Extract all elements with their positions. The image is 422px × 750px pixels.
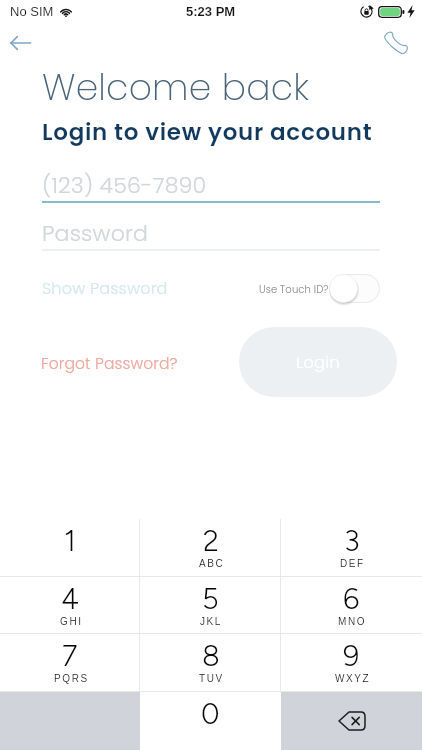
staticText: 6 <box>343 581 360 616</box>
staticText: 1 <box>64 523 76 558</box>
staticText: Forgot Password? <box>41 353 178 375</box>
staticText: Login to view your account <box>42 116 373 148</box>
staticText: WXYZ <box>335 673 371 684</box>
button[interactable]: Call support <box>375 22 417 64</box>
staticText: 3 <box>344 523 360 558</box>
button[interactable]: 3 <box>281 519 422 576</box>
staticText: ABC <box>199 558 225 569</box>
button[interactable]: 8 <box>140 634 281 691</box>
staticText: PQRS <box>54 673 89 684</box>
button[interactable]: 0 <box>140 692 281 750</box>
button[interactable]: Delete <box>281 692 422 750</box>
staticText: Show Password <box>42 277 168 299</box>
staticText: Use Touch ID? <box>259 282 329 296</box>
button[interactable]: 2 <box>140 519 281 576</box>
staticText: 5 <box>202 581 219 616</box>
staticText: 2 <box>203 523 219 558</box>
button[interactable]: 1 <box>0 519 140 576</box>
button[interactable]: 6 <box>281 577 422 633</box>
button[interactable]: Use Touch ID? <box>252 272 388 305</box>
staticText: TUV <box>199 673 224 684</box>
staticText: No SIM <box>10 4 54 19</box>
staticText: Login <box>296 351 340 374</box>
button[interactable]: Forgot Password? <box>35 349 184 379</box>
staticText: 5:23 PM <box>186 4 236 19</box>
staticText: MNO <box>338 616 367 627</box>
staticText: Welcome back <box>42 62 310 112</box>
button[interactable]: 4 <box>0 577 140 633</box>
staticText: 0 <box>201 696 220 731</box>
staticText: 8 <box>202 638 220 673</box>
button[interactable]: Show Password <box>36 273 174 303</box>
button[interactable]: Back <box>2 24 39 61</box>
button[interactable]: Login <box>239 327 397 397</box>
staticText: 4 <box>61 581 79 616</box>
staticText: DEF <box>340 558 365 569</box>
other: Use Touch ID <box>329 274 380 303</box>
staticText: 7 <box>62 638 78 673</box>
staticText: (123) 456-7890 <box>42 170 207 201</box>
staticText: JKL <box>200 616 223 627</box>
button[interactable]: 7 <box>0 634 140 691</box>
button[interactable]: 9 <box>281 634 422 691</box>
staticText: Password <box>42 218 149 249</box>
button[interactable]: 5 <box>140 577 281 633</box>
staticText: GHI <box>60 616 83 627</box>
staticText: 9 <box>343 638 360 673</box>
